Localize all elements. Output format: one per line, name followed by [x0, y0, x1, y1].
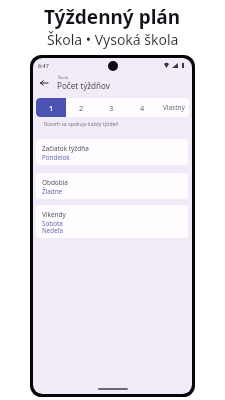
- button[interactable]: Víkendy: [36, 205, 188, 238]
- button[interactable]: Vlastný: [158, 98, 189, 117]
- button[interactable]: 4: [127, 98, 158, 117]
- staticText: 2: [79, 103, 84, 113]
- staticText: Víkendy: [42, 210, 66, 219]
- staticText: Začiatok týždňa: [42, 144, 89, 153]
- staticText: Vlastný: [163, 103, 185, 112]
- staticText: 3: [109, 103, 114, 113]
- button[interactable]: 3: [96, 98, 127, 117]
- button[interactable]: 1: [36, 98, 66, 117]
- button[interactable]: Obdobia: [36, 173, 188, 199]
- staticText: 6:47: [38, 62, 49, 69]
- staticText: Počet týždňov: [57, 80, 110, 91]
- staticText: Týždenný plán: [44, 4, 181, 30]
- staticText: Pondelok: [42, 153, 70, 162]
- button[interactable]: Začiatok týždňa: [36, 139, 188, 165]
- button[interactable]: Späť: [34, 73, 53, 92]
- staticText: Obdobia: [42, 178, 68, 187]
- staticText: Škola: [58, 75, 69, 80]
- staticText: Sobota Nedeľa: [42, 219, 63, 235]
- button[interactable]: 2: [66, 98, 96, 117]
- staticText: Rozvrh sa opakuje každý týždeň: [44, 121, 119, 128]
- staticText: Žiadne: [42, 187, 63, 196]
- staticText: 4: [140, 103, 145, 113]
- staticText: Škola • Vysoká škola: [47, 30, 179, 49]
- staticText: 1: [49, 103, 54, 113]
